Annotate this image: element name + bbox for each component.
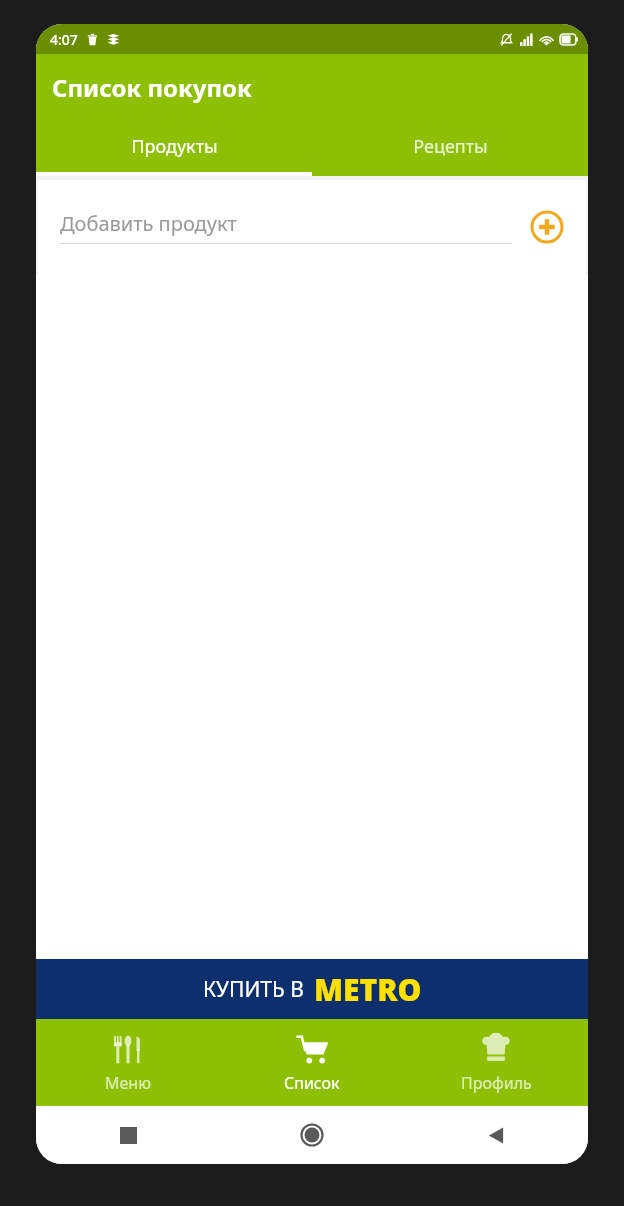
button[interactable]: Home: [220, 1106, 404, 1164]
button[interactable]: Профиль: [404, 1019, 588, 1106]
button[interactable]: Back: [404, 1106, 588, 1164]
staticText: Меню: [105, 1072, 151, 1094]
button[interactable]: Продукты: [36, 120, 312, 172]
staticText: КУПИТЬ В: [203, 975, 304, 1004]
staticText: 4:07: [50, 30, 78, 49]
staticText: Список покупок: [52, 71, 252, 104]
staticText: Рецепты: [413, 134, 488, 159]
button[interactable]: КУПИТЬ В: [36, 959, 588, 1019]
staticText: Добавить продукт: [60, 210, 237, 237]
button[interactable]: Список: [220, 1019, 404, 1106]
staticText: Профиль: [461, 1072, 532, 1094]
button[interactable]: Рецепты: [312, 120, 588, 172]
button[interactable]: Добавить продукт: [526, 206, 568, 248]
staticText: METRO: [314, 969, 422, 1010]
button[interactable]: Меню: [36, 1019, 220, 1106]
button[interactable]: Recents: [36, 1106, 220, 1164]
staticText: Список: [284, 1072, 340, 1094]
staticText: Продукты: [131, 134, 218, 159]
